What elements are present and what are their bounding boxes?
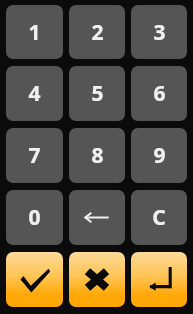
button[interactable]: 7 bbox=[6, 128, 63, 183]
staticText: 5 bbox=[91, 79, 104, 108]
button[interactable]: 5 bbox=[69, 66, 125, 121]
staticText: 4 bbox=[28, 79, 41, 108]
staticText: 0 bbox=[28, 203, 41, 232]
button[interactable]: 3 bbox=[131, 5, 187, 59]
staticText: 9 bbox=[153, 141, 166, 170]
staticText: 7 bbox=[28, 141, 41, 170]
staticText: 1 bbox=[28, 18, 41, 47]
button[interactable]: 4 bbox=[6, 66, 63, 121]
button[interactable]: Backspace bbox=[69, 190, 125, 245]
button[interactable]: 0 bbox=[6, 190, 63, 245]
staticText: 3 bbox=[153, 18, 166, 47]
staticText: 2 bbox=[91, 18, 104, 47]
button[interactable]: 9 bbox=[131, 128, 187, 183]
button[interactable]: 1 bbox=[6, 5, 63, 59]
button[interactable]: Enter bbox=[131, 252, 187, 307]
button[interactable]: 6 bbox=[131, 66, 187, 121]
staticText: 8 bbox=[91, 141, 104, 170]
button[interactable]: C bbox=[131, 190, 187, 245]
staticText: C bbox=[152, 203, 166, 232]
button[interactable]: 2 bbox=[69, 5, 125, 59]
staticText: 6 bbox=[153, 79, 166, 108]
button[interactable]: Cancel bbox=[69, 252, 125, 307]
button[interactable]: 8 bbox=[69, 128, 125, 183]
button[interactable]: Accept bbox=[6, 252, 63, 307]
